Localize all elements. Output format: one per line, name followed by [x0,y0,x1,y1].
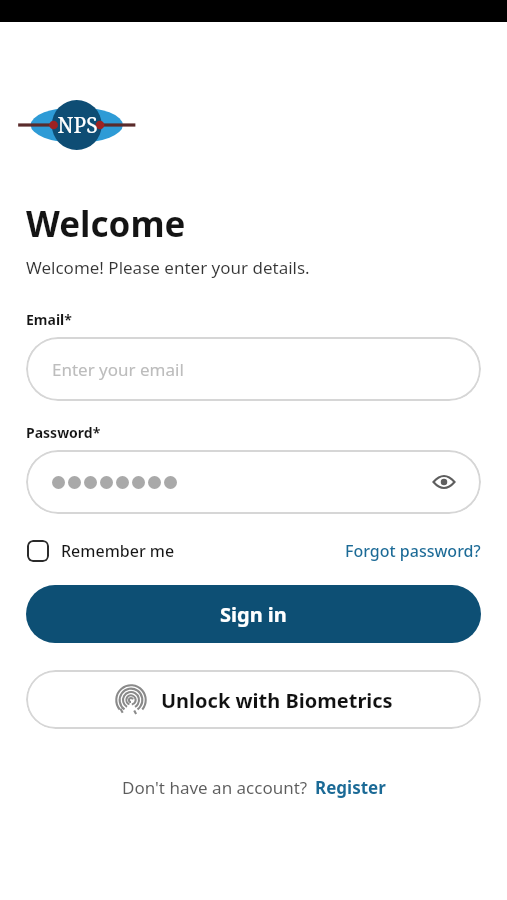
staticText: Welcome! Please enter your details. [26,256,310,279]
other: NPS logo [26,96,134,154]
staticText: Sign in [220,601,287,628]
staticText: Password* [26,423,101,442]
staticText: Forgot password? [345,540,481,562]
staticText: Email* [26,310,72,329]
button[interactable]: Register [315,773,386,802]
button[interactable]: Enter your email [26,337,481,401]
staticText: Register [315,776,386,799]
staticText: Enter your email [52,358,184,381]
staticText: Unlock with Biometrics [161,687,393,714]
button[interactable]: Remember me [26,536,176,566]
button[interactable]: Sign in [26,585,481,643]
button[interactable]: Unlock with Biometrics [26,670,481,729]
staticText: Remember me [61,540,175,562]
button[interactable]: Show password [427,465,461,499]
button[interactable]: Show password [26,450,481,514]
staticText: NPS [57,111,98,140]
button[interactable]: Forgot password? [345,536,481,566]
staticText: Don't have an account? [122,776,308,799]
staticText: Welcome [26,200,186,248]
